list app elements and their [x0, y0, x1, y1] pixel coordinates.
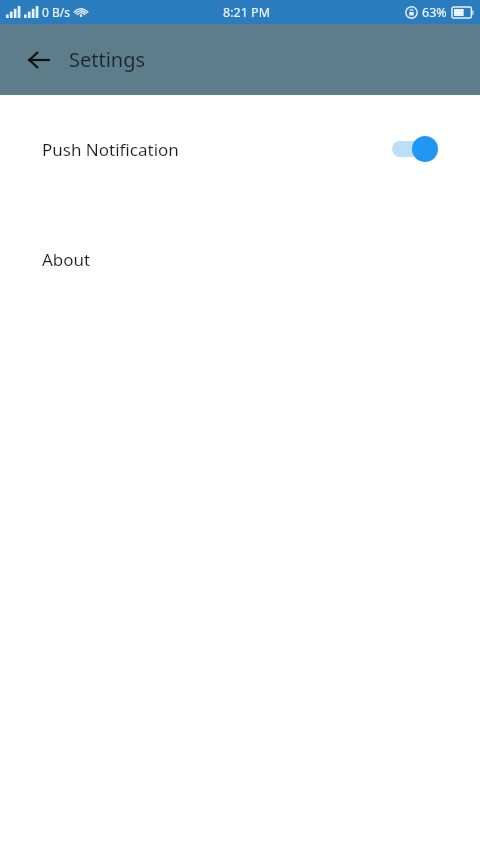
staticText: 63%	[422, 4, 447, 21]
staticText: Push Notification	[42, 138, 179, 161]
button[interactable]: Back	[22, 43, 56, 77]
staticText: Settings	[69, 46, 146, 73]
staticText: 0 B/s	[42, 4, 70, 20]
staticText: About	[42, 248, 91, 271]
button[interactable]: Push Notification	[26, 108, 454, 190]
button[interactable]: Push Notification toggle	[392, 136, 438, 162]
button[interactable]: About	[26, 218, 454, 300]
staticText: 8:21 PM	[223, 4, 270, 21]
